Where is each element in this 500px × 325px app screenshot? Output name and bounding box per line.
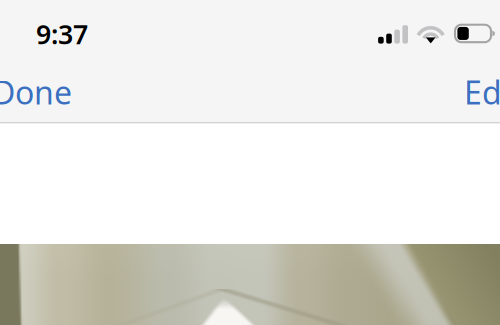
staticText: Done — [0, 71, 72, 113]
staticText: 9:37 — [36, 16, 88, 52]
button[interactable]: Edit — [464, 71, 500, 113]
staticText: Edit — [464, 71, 500, 113]
button[interactable]: Done — [0, 71, 72, 113]
